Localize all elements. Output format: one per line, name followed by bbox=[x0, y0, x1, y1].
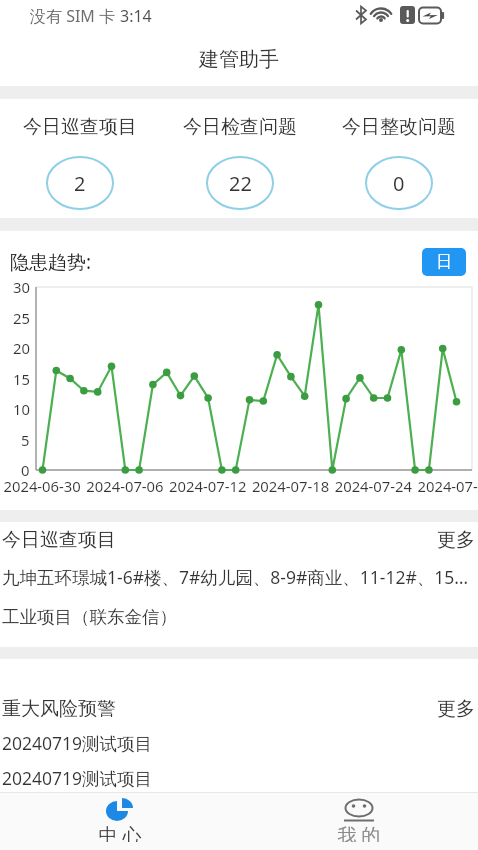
staticText: 22 bbox=[229, 170, 252, 197]
button[interactable]: 今日巡查项目 bbox=[0, 99, 160, 210]
staticText: 今日检查问题 bbox=[183, 115, 297, 139]
button[interactable]: 九坤五环璟城1-6#楼、7#幼儿园、8-9#商业、11-12#、15… bbox=[0, 564, 478, 590]
button[interactable]: 日 bbox=[422, 248, 466, 276]
button[interactable]: 工业项目（联东金信） bbox=[0, 604, 478, 630]
staticText: 今日巡查项目 bbox=[2, 528, 116, 552]
staticText: 中心 bbox=[96, 824, 144, 842]
staticText: 更多 bbox=[437, 528, 475, 552]
button[interactable]: 20240719测试项目 bbox=[0, 730, 478, 756]
staticText: 20240719测试项目 bbox=[2, 766, 153, 790]
button[interactable]: 更多 bbox=[437, 697, 475, 721]
button[interactable]: 更多 bbox=[437, 528, 475, 552]
button[interactable]: 20240719测试项目 bbox=[0, 765, 478, 790]
staticText: 九坤五环璟城1-6#楼、7#幼儿园、8-9#商业、11-12#、15… bbox=[2, 565, 469, 589]
button[interactable]: 今日检查问题 bbox=[160, 99, 319, 210]
staticText: 更多 bbox=[437, 697, 475, 721]
staticText: 隐患趋势: bbox=[10, 249, 92, 275]
staticText: 0 bbox=[393, 170, 405, 197]
staticText: 日 bbox=[436, 252, 452, 272]
staticText: 没有 SIM 卡 bbox=[30, 5, 120, 27]
staticText: 今日巡查项目 bbox=[23, 115, 137, 139]
staticText: 建管助手 bbox=[199, 47, 279, 72]
staticText: 20240719测试项目 bbox=[2, 731, 153, 755]
staticText: 我的 bbox=[335, 824, 383, 842]
button[interactable]: 我的 bbox=[239, 793, 478, 850]
staticText: 重大风险预警 bbox=[2, 697, 116, 721]
staticText: 3:14 bbox=[120, 5, 152, 27]
staticText: 2 bbox=[74, 170, 86, 197]
staticText: 工业项目（联东金信） bbox=[2, 606, 177, 628]
staticText: 今日整改问题 bbox=[342, 115, 456, 139]
button[interactable]: 中心 bbox=[0, 793, 239, 850]
button[interactable]: 今日整改问题 bbox=[319, 99, 478, 210]
